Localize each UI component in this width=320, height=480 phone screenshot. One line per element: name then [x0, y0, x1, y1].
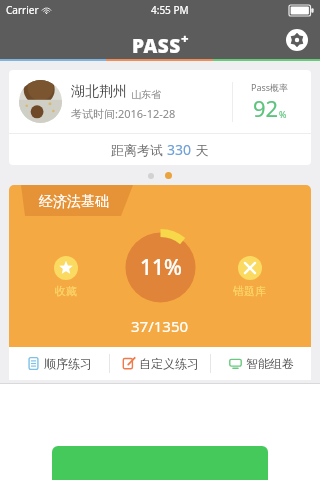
staticText: 自定义练习	[139, 356, 199, 371]
staticText: 4:55 PM	[151, 3, 189, 17]
staticText: 顺序练习	[44, 356, 92, 371]
button[interactable]: 错题库	[230, 253, 269, 301]
staticText: 距离考试	[111, 141, 167, 159]
staticText: 330	[167, 140, 192, 159]
button[interactable]	[52, 446, 268, 480]
staticText: 智能组卷	[246, 356, 294, 371]
staticText: PASS	[132, 33, 181, 59]
staticText: Pass概率	[251, 81, 289, 93]
staticText: %	[279, 108, 287, 120]
staticText: +	[181, 29, 189, 47]
staticText: 考试时间:2016-12-28	[71, 106, 176, 121]
button[interactable]: 湖北荆州	[9, 70, 311, 165]
staticText: 92	[253, 93, 279, 123]
staticText: 湖北荆州	[71, 83, 127, 101]
staticText: 37/1350	[131, 316, 189, 336]
staticText: Carrier	[6, 3, 39, 17]
staticText: 收藏	[55, 284, 77, 298]
button[interactable]: 自定义练习	[110, 347, 210, 380]
staticText: 天	[192, 141, 209, 159]
staticText: 错题库	[233, 284, 266, 298]
button[interactable]: Settings	[284, 27, 310, 53]
button[interactable]: 智能组卷	[211, 347, 311, 380]
staticText: 山东省	[131, 88, 161, 101]
button[interactable]: 顺序练习	[9, 347, 109, 380]
staticText: 经济法基础	[39, 193, 109, 211]
staticText: 11%	[140, 253, 182, 282]
button[interactable]: 收藏	[51, 253, 81, 301]
